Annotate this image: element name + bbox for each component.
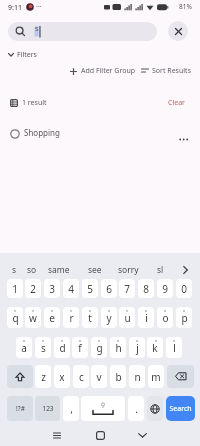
button[interactable]: 123	[35, 396, 60, 421]
button[interactable]: s	[35, 337, 51, 358]
button[interactable]: 0	[176, 279, 192, 298]
staticText: sl	[157, 264, 164, 276]
staticText: s	[12, 264, 17, 276]
staticText: w	[29, 311, 37, 325]
button[interactable]: 8	[138, 279, 154, 298]
staticText: n	[134, 370, 141, 384]
staticText: 1 result	[22, 98, 47, 108]
button[interactable]: r	[63, 307, 79, 328]
staticText: Clear	[168, 98, 185, 108]
staticText: p	[181, 311, 188, 325]
staticText: z	[41, 370, 46, 384]
button[interactable]: h	[110, 337, 126, 358]
button[interactable]: Search	[166, 396, 195, 421]
staticText: 8	[143, 282, 149, 296]
staticText: 4	[68, 282, 74, 296]
button[interactable]: j	[129, 337, 145, 358]
button[interactable]: z	[35, 365, 51, 388]
button[interactable]: see	[88, 264, 112, 277]
button[interactable]: y	[101, 307, 117, 328]
staticText: g	[96, 341, 103, 355]
button[interactable]: sorry	[118, 264, 154, 277]
staticText: a	[21, 341, 27, 355]
button[interactable]: Sort Results	[138, 65, 196, 78]
button[interactable]: v	[91, 365, 107, 388]
button[interactable]	[7, 365, 33, 388]
staticText: q	[12, 311, 19, 325]
staticText: r	[69, 311, 74, 325]
button[interactable]: !?#	[7, 396, 33, 421]
button[interactable]	[168, 21, 188, 41]
button[interactable]: s	[12, 264, 24, 277]
button[interactable]: so	[27, 264, 45, 277]
button[interactable]: Shopping	[0, 123, 200, 145]
staticText: .	[135, 402, 138, 416]
button[interactable]: 1	[7, 279, 23, 298]
button[interactable]: t	[82, 307, 98, 328]
button[interactable]: .	[128, 396, 144, 421]
staticText: see	[88, 264, 102, 276]
staticText: s	[41, 341, 46, 355]
button[interactable]: i	[138, 307, 154, 328]
staticText: ,	[70, 402, 73, 416]
button[interactable]: k	[147, 337, 163, 358]
button[interactable]: Clear	[164, 96, 192, 110]
button[interactable]	[135, 428, 149, 442]
staticText: f	[78, 341, 82, 355]
button[interactable]: 7	[119, 279, 135, 298]
button[interactable]	[81, 396, 125, 421]
button[interactable]: o	[157, 307, 173, 328]
staticText: s	[35, 24, 39, 34]
button[interactable]: m	[148, 365, 164, 388]
staticText: same	[48, 264, 70, 276]
button[interactable]: same	[48, 264, 78, 277]
button[interactable]: p	[176, 307, 192, 328]
button[interactable]: 5	[82, 279, 98, 298]
staticText: 2	[30, 282, 36, 296]
staticText: Shopping	[24, 127, 60, 138]
button[interactable]: ,	[63, 396, 79, 421]
button[interactable]: x	[54, 365, 70, 388]
button[interactable]: u	[119, 307, 135, 328]
staticText: 6	[106, 282, 112, 296]
staticText: !?#	[16, 404, 25, 413]
button[interactable]: c	[73, 365, 89, 388]
button[interactable]: l	[166, 337, 182, 358]
button[interactable]: n	[129, 365, 145, 388]
staticText: 123	[42, 404, 54, 413]
button[interactable]: d	[54, 337, 70, 358]
button[interactable]: q	[7, 307, 23, 328]
button[interactable]: s	[8, 22, 157, 41]
button[interactable]: f	[72, 337, 88, 358]
button[interactable]: 3	[44, 279, 60, 298]
button[interactable]: a	[16, 337, 32, 358]
staticText: 0	[181, 282, 187, 296]
staticText: 1	[12, 282, 18, 296]
button[interactable]: Add Filter Group	[66, 65, 138, 78]
staticText: Add Filter Group	[81, 66, 136, 76]
staticText: 3	[49, 282, 55, 296]
button[interactable]: 9	[157, 279, 173, 298]
staticText: y	[106, 311, 112, 325]
staticText: 5	[87, 282, 93, 296]
staticText: ...	[36, 0, 42, 10]
button[interactable]	[167, 365, 194, 388]
button[interactable]: 2	[25, 279, 41, 298]
button[interactable]: 6	[101, 279, 117, 298]
staticText: b	[115, 370, 122, 384]
button[interactable]: Filters	[6, 49, 66, 61]
staticText: t	[88, 311, 92, 325]
staticText: u	[124, 311, 131, 325]
staticText: d	[59, 341, 66, 355]
button[interactable]: b	[110, 365, 126, 388]
button[interactable]: g	[91, 337, 107, 358]
button[interactable]: e	[44, 307, 60, 328]
staticText: l	[173, 341, 176, 355]
button[interactable]: 4	[63, 279, 79, 298]
button[interactable]: sl	[157, 264, 175, 277]
button[interactable]	[50, 428, 64, 442]
button[interactable]	[147, 396, 163, 421]
button[interactable]	[93, 428, 107, 442]
button[interactable]: w	[25, 307, 41, 328]
staticText: sorry	[118, 264, 139, 276]
